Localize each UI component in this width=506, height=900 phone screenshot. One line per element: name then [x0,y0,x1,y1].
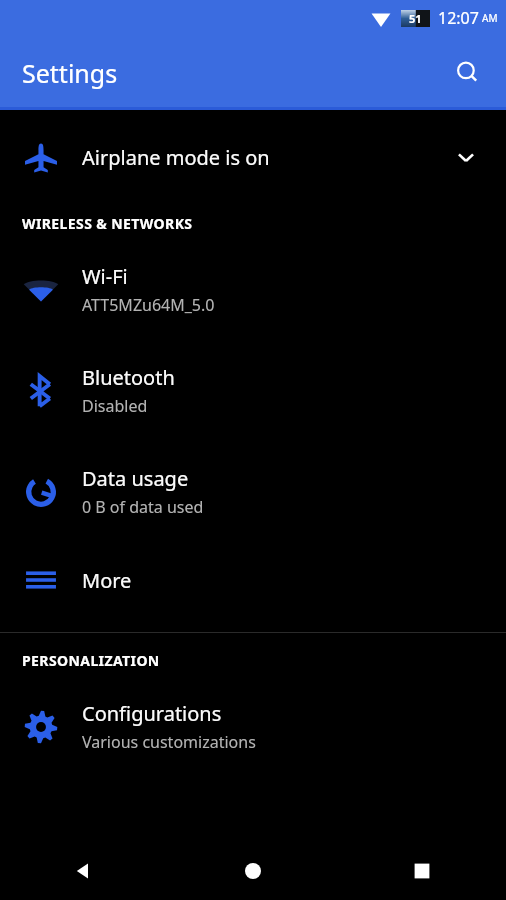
button[interactable]: Home [168,842,337,900]
staticText: Disabled [82,395,148,417]
staticText: Airplane mode is on [82,144,270,171]
staticText: Data usage [82,465,189,492]
button[interactable]: Airplane mode is on [0,118,506,196]
button[interactable]: Wi-Fi [0,239,506,340]
staticText: 0 B of data used [82,496,204,518]
button[interactable]: More [0,542,506,618]
staticText: Wi-Fi [82,263,128,290]
staticText: Various customizations [82,731,256,753]
staticText: AM [482,11,498,25]
staticText: PERSONALIZATION [22,651,160,670]
button[interactable]: Search [444,49,492,97]
staticText: Configurations [82,700,222,727]
button[interactable]: Bluetooth [0,340,506,441]
button[interactable]: Back [0,842,168,900]
button[interactable]: Data usage [0,441,506,542]
staticText: WIRELESS & NETWORKS [22,214,193,233]
button[interactable]: Recents [337,842,506,900]
button[interactable]: Expand [444,135,488,179]
staticText: Bluetooth [82,364,175,391]
staticText: More [82,567,132,594]
button[interactable]: Configurations [0,676,506,777]
staticText: 51 [409,11,422,26]
staticText: Settings [22,56,118,90]
staticText: ATT5MZu64M_5.0 [82,294,215,316]
staticText: 12:07 [438,7,479,29]
